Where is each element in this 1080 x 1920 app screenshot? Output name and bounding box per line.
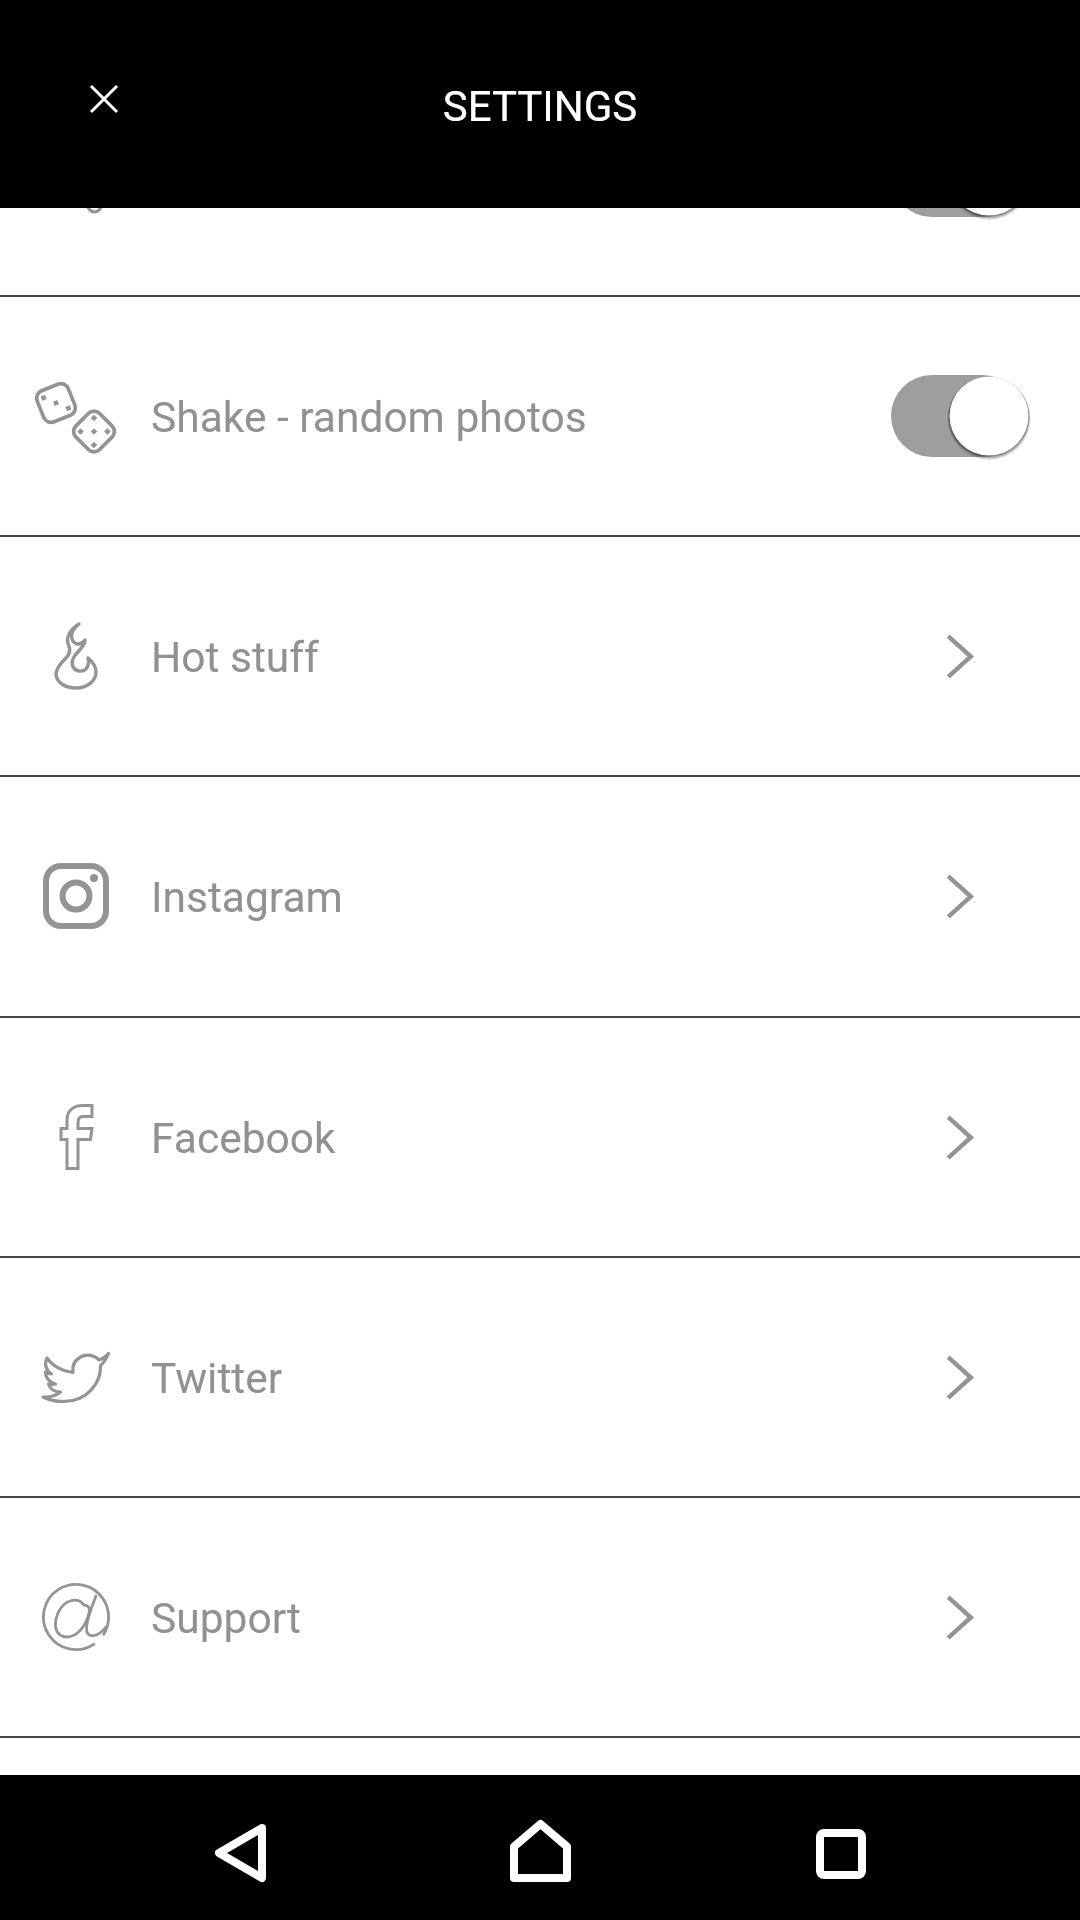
button[interactable]: Twitter [0,1258,1080,1496]
staticText: Instagram [151,873,343,923]
staticText: SETTINGS [0,82,1080,131]
button[interactable]: Support [0,1498,1080,1736]
staticText: Support [151,1594,301,1644]
button[interactable]: Close [44,39,164,159]
staticText: Twitter [151,1354,283,1404]
staticText: Hot stuff [151,633,319,683]
staticText: Facebook [151,1114,336,1164]
button[interactable]: Shake - random photos [0,297,1080,535]
button[interactable]: Hot stuff [0,537,1080,775]
button[interactable]: Home [475,1786,605,1916]
button[interactable]: Instagram [0,777,1080,1015]
button[interactable]: Facebook [0,1018,1080,1256]
button[interactable]: Back [175,1788,305,1918]
button[interactable] [0,55,1080,293]
button[interactable]: Recents [776,1789,906,1919]
staticText: Shake - random photos [151,393,587,443]
